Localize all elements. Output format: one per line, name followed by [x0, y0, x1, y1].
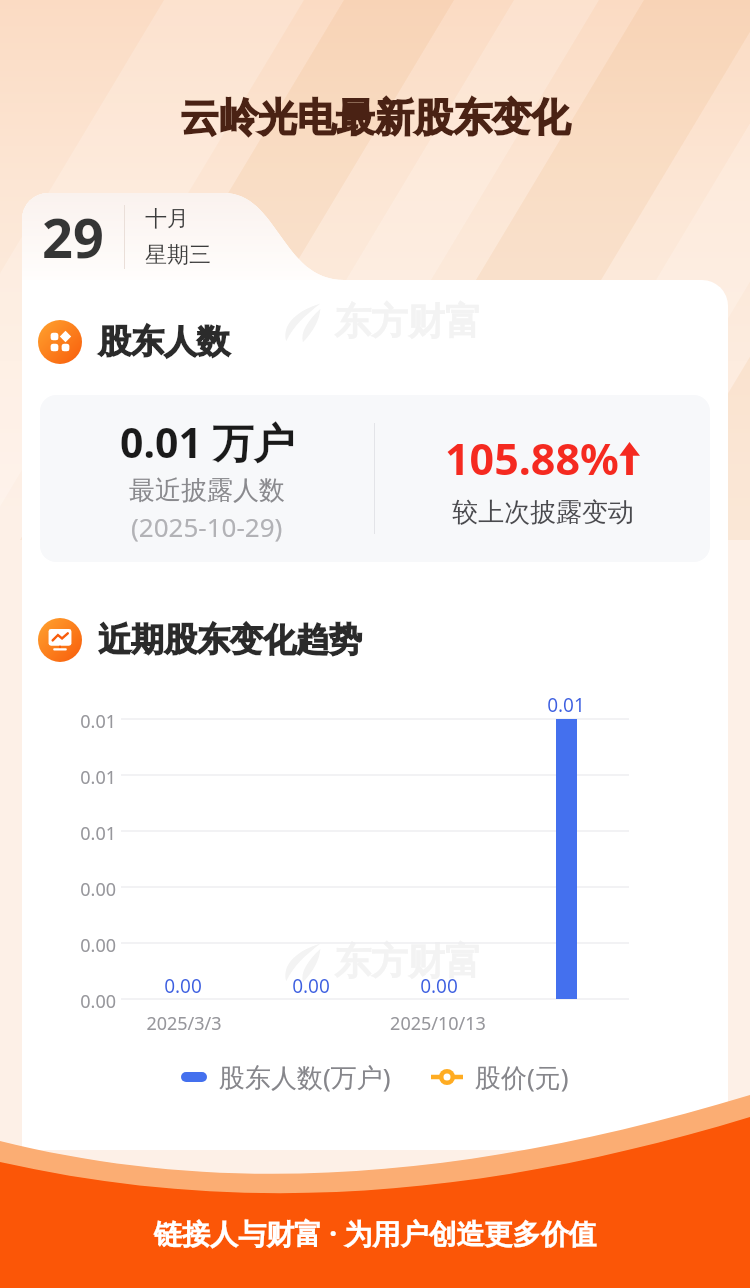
staticText: (2025-10-29)	[131, 509, 283, 544]
staticText: 0.00	[60, 989, 116, 1014]
staticText: 0.01	[60, 765, 116, 790]
button[interactable]: 近期股东变化趋势	[36, 616, 364, 664]
button[interactable]: 0.01 万户	[40, 395, 710, 562]
other: 股东人数	[38, 320, 82, 364]
staticText: 0.00	[60, 933, 116, 958]
staticText: 0.00	[60, 877, 116, 902]
other: 近期股东变化趋势	[38, 618, 82, 662]
staticText: 0.01	[60, 709, 116, 734]
staticText: 较上次披露变动	[452, 496, 634, 529]
staticText: 股东人数(万户)	[219, 1059, 391, 1095]
button[interactable]: 29	[22, 193, 272, 280]
staticText: 29	[42, 200, 104, 274]
staticText: 0.01	[60, 821, 116, 846]
button[interactable]: 股东人数	[36, 318, 232, 366]
staticText: 东方财富	[334, 298, 482, 345]
staticText: 云岭光电最新股东变化	[180, 93, 570, 142]
staticText: 最近披露人数	[129, 474, 285, 507]
staticText: 东方财富	[334, 938, 482, 985]
staticText: 近期股东变化趋势	[98, 619, 362, 661]
staticText: 股价(元)	[475, 1059, 569, 1095]
staticText: 链接人与财富 · 为用户创造更多价值	[154, 1214, 597, 1252]
staticText: 0.00	[153, 973, 213, 999]
staticText: 0.01 万户	[120, 414, 295, 470]
button[interactable]: 股东人数(万户)	[177, 1055, 395, 1099]
staticText: 105.88%	[445, 429, 619, 488]
staticText: 十月	[145, 205, 189, 233]
staticText: 0.01	[536, 692, 596, 718]
staticText: 股东人数	[98, 321, 230, 363]
staticText: 0.00	[281, 973, 341, 999]
staticText: 2025/3/3	[144, 1011, 224, 1036]
staticText: 星期三	[145, 241, 211, 269]
staticText: 2025/10/13	[390, 1011, 486, 1036]
button[interactable]: 股价(元)	[427, 1055, 573, 1099]
staticText: 0.00	[409, 973, 469, 999]
